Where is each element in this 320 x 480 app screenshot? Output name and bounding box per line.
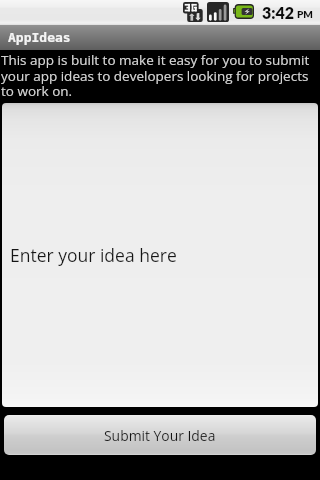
button[interactable]: Enter your idea here [2,103,318,407]
other: Mobile data 3G [183,2,203,22]
other: Battery charging [233,4,254,19]
staticText: 3:42 [262,3,295,22]
staticText: Enter your idea here [10,243,177,267]
staticText: This app is built to make it easy for yo… [1,51,319,100]
staticText: Submit Your Idea [104,426,216,445]
staticText: PM [297,8,313,20]
button[interactable]: Submit Your Idea [4,415,316,455]
other: Signal strength [207,2,229,22]
staticText: AppIdeas [8,30,71,45]
